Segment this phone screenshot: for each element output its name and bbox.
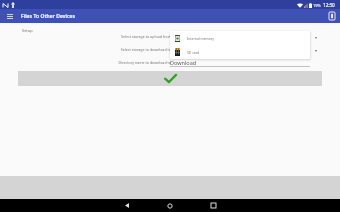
button[interactable]: Back (114, 199, 140, 212)
button[interactable]: SD card (170, 45, 310, 59)
staticText: Files To Other Devices (21, 13, 75, 20)
button[interactable]: Internal memory (170, 31, 310, 45)
staticText: SD card (187, 50, 200, 55)
staticText: Select storage to download to (71, 47, 171, 52)
staticText: Internal memory (187, 36, 214, 41)
staticText: Directory name to download to (71, 60, 171, 65)
button[interactable]: Confirm (18, 71, 322, 86)
staticText: Setup (22, 28, 33, 33)
staticText: Download (170, 59, 197, 66)
staticText: Select storage to upload from (71, 34, 171, 39)
button[interactable]: Recent apps (200, 199, 226, 212)
button[interactable]: Save (325, 9, 339, 23)
button[interactable]: Home (157, 199, 183, 212)
staticText: 12:50 (323, 2, 335, 8)
button[interactable]: Open navigation menu (0, 9, 19, 23)
staticText: 19% (313, 3, 321, 8)
